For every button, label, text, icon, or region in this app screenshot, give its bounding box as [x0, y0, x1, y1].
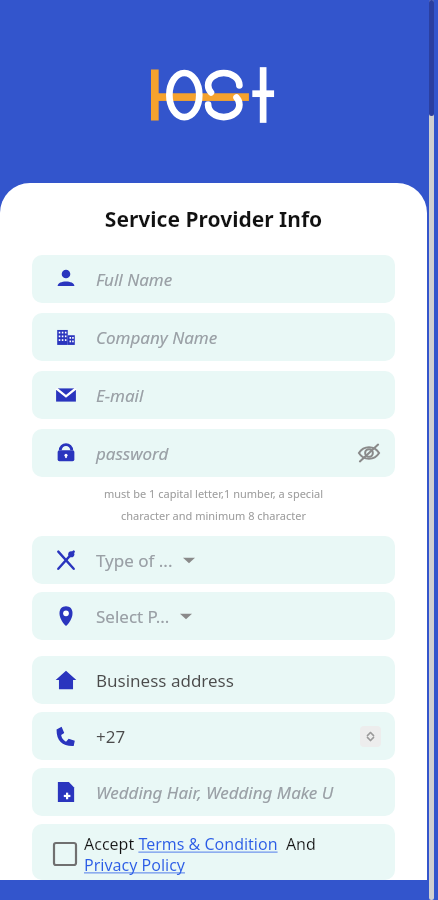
staticText: must be 1 capital letter,1 number, a spe…	[0, 486, 427, 501]
button[interactable]: Accept Terms & Condition And Privacy Pol…	[32, 824, 395, 880]
button[interactable]: Type of ...	[32, 536, 395, 584]
staticText: Business address	[96, 669, 234, 692]
button[interactable]: Change country code	[360, 726, 381, 747]
staticText: Full Name	[96, 268, 173, 291]
staticText: Select P...	[96, 605, 170, 628]
staticText: Type of ...	[96, 549, 173, 572]
button[interactable]: Wedding Hair, Wedding Make U	[32, 768, 395, 816]
button[interactable]: Full Name	[32, 255, 395, 303]
button[interactable]: Select P...	[32, 592, 395, 640]
staticText: character and minimum 8 character	[0, 508, 427, 523]
button[interactable]: password	[32, 429, 395, 477]
staticText: Accept Terms & Condition And Privacy Pol…	[84, 833, 316, 876]
button[interactable]: Company Name	[32, 313, 395, 361]
button[interactable]: Business address	[32, 656, 395, 704]
staticText: Service Provider Info	[0, 205, 427, 234]
staticText: password	[96, 442, 169, 465]
staticText: +27	[96, 725, 126, 748]
staticText: Wedding Hair, Wedding Make U	[96, 781, 334, 804]
button[interactable]: +27	[32, 712, 395, 760]
button[interactable]: E-mail	[32, 371, 395, 419]
staticText: E-mail	[96, 384, 144, 407]
staticText: Company Name	[96, 326, 218, 349]
